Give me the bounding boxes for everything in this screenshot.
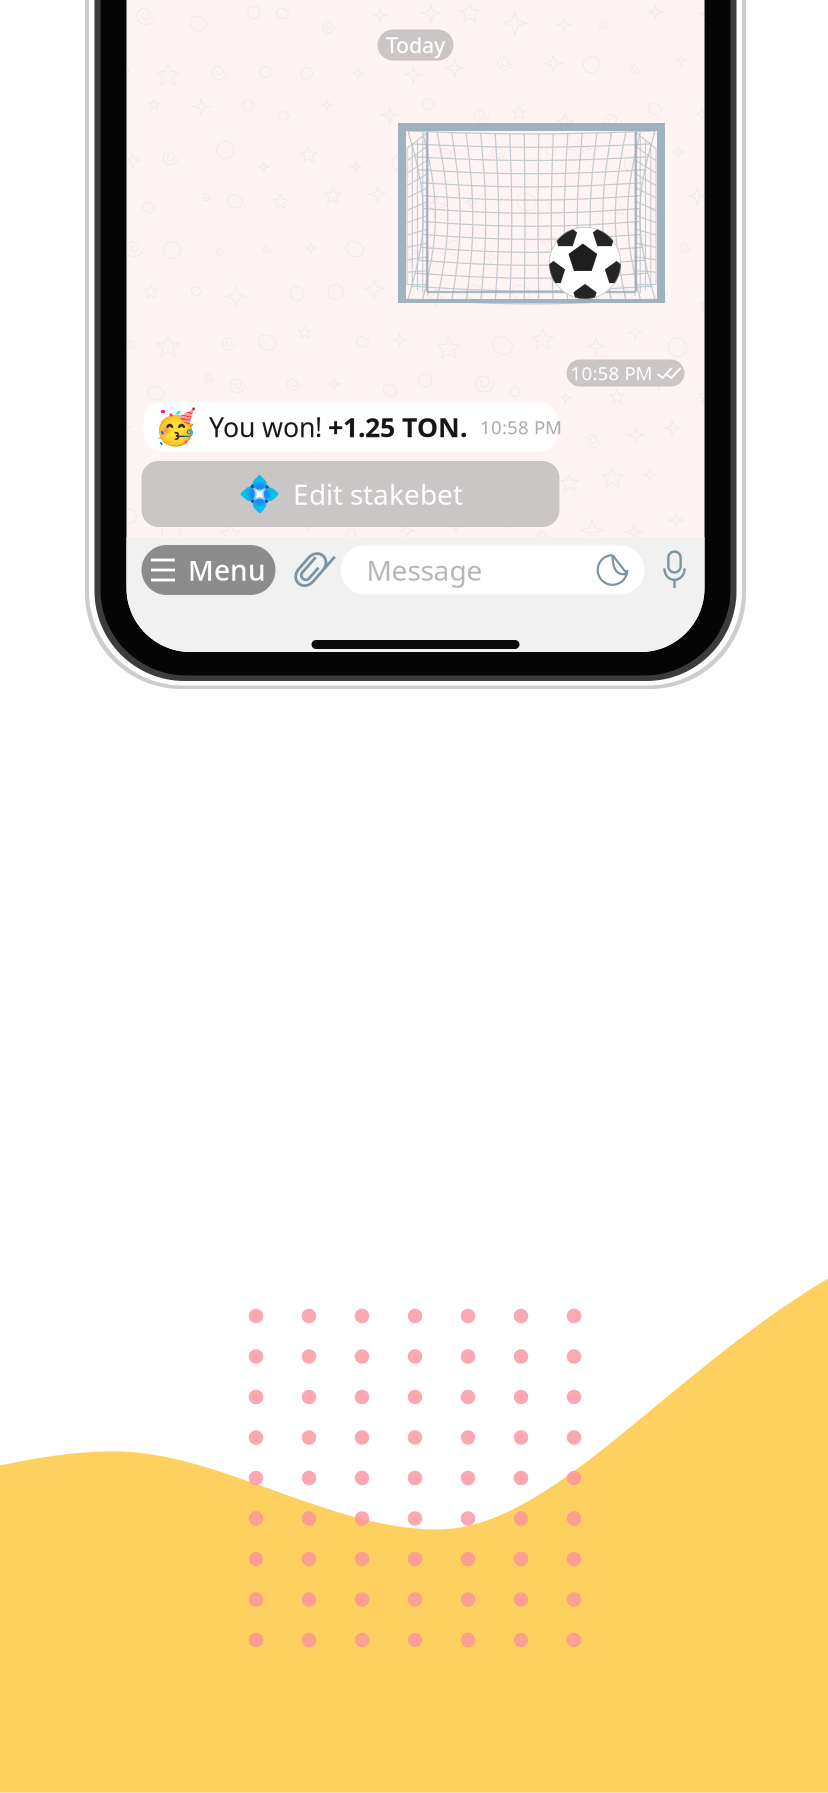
staticText: Menu bbox=[188, 551, 266, 589]
staticText: 🥳 bbox=[154, 407, 197, 447]
staticText: Edit stakebet bbox=[293, 475, 463, 513]
staticText: 10:58 PM bbox=[480, 415, 562, 439]
button[interactable]: Attach bbox=[293, 549, 327, 591]
button[interactable]: 💠 bbox=[141, 461, 559, 527]
staticText: Message bbox=[366, 551, 482, 589]
staticText: Today bbox=[386, 31, 445, 59]
staticText: 💠 bbox=[238, 474, 281, 514]
button[interactable]: Menu bbox=[141, 545, 275, 595]
button[interactable]: Voice message bbox=[660, 550, 688, 590]
staticText: +1.25 TON. bbox=[328, 409, 467, 445]
staticText: 10:58 PM bbox=[570, 361, 652, 385]
staticText: You won! bbox=[209, 409, 322, 445]
